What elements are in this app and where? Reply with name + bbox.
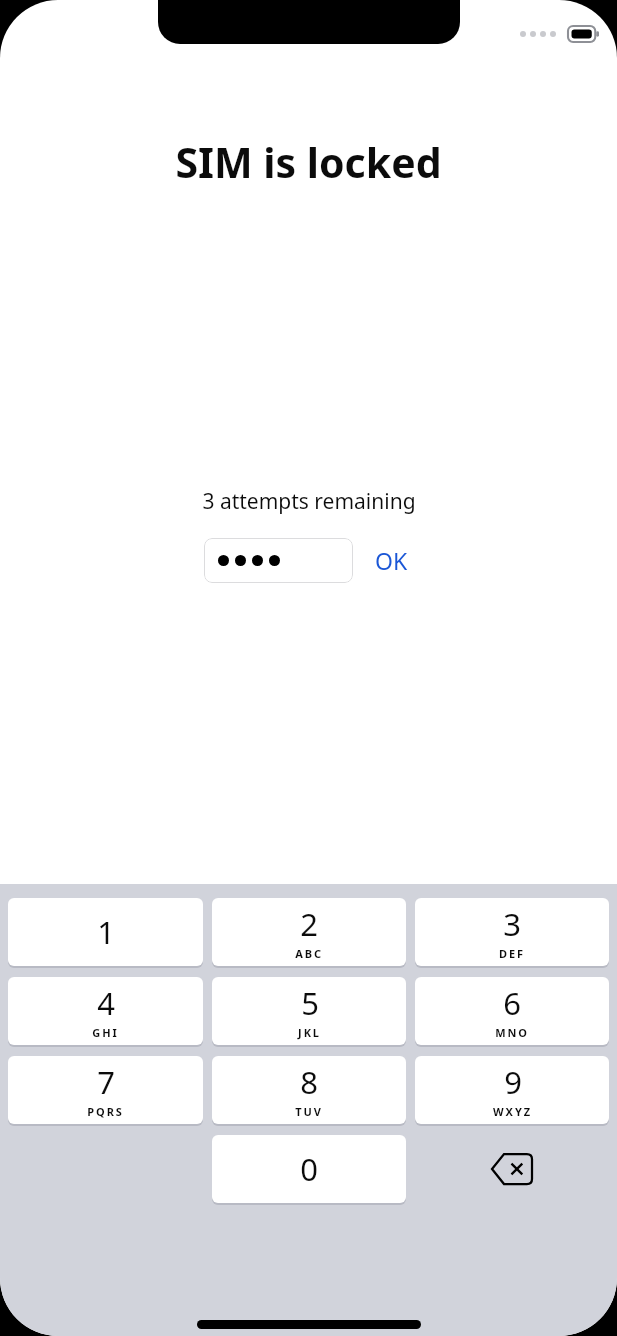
staticText: 3 attempts remaining [202, 487, 416, 516]
staticText: 3 [503, 903, 521, 945]
staticText: 7 [97, 1061, 115, 1103]
button[interactable]: 7 [8, 1056, 203, 1124]
staticText: SIM is locked [0, 134, 617, 190]
staticText: 8 [300, 1061, 318, 1103]
staticText: ABC [295, 946, 323, 961]
button[interactable]: Delete [415, 1135, 609, 1203]
button[interactable]: 2 [212, 898, 406, 966]
button[interactable]: 9 [415, 1056, 609, 1124]
staticText: 0 [300, 1148, 318, 1190]
staticText: DEF [499, 946, 525, 961]
button[interactable]: 1 [8, 898, 203, 966]
staticText: TUV [295, 1104, 323, 1119]
staticText: 1 [97, 911, 115, 953]
staticText: JKL [298, 1025, 321, 1040]
staticText: 2 [300, 903, 318, 945]
staticText: OK [375, 545, 408, 576]
button[interactable] [204, 538, 353, 583]
staticText: 5 [301, 982, 319, 1024]
button[interactable]: 6 [415, 977, 609, 1045]
button[interactable]: 3 [415, 898, 609, 966]
staticText: WXYZ [493, 1104, 532, 1119]
button[interactable]: 8 [212, 1056, 406, 1124]
button[interactable]: 0 [212, 1135, 406, 1203]
button[interactable]: OK [369, 537, 414, 584]
staticText: 4 [97, 982, 115, 1024]
staticText: 6 [503, 982, 521, 1024]
staticText: PQRS [87, 1104, 124, 1119]
staticText: GHI [92, 1025, 119, 1040]
button[interactable]: 5 [212, 977, 406, 1045]
button[interactable]: 4 [8, 977, 203, 1045]
staticText: MNO [495, 1025, 529, 1040]
staticText: 9 [504, 1061, 522, 1103]
